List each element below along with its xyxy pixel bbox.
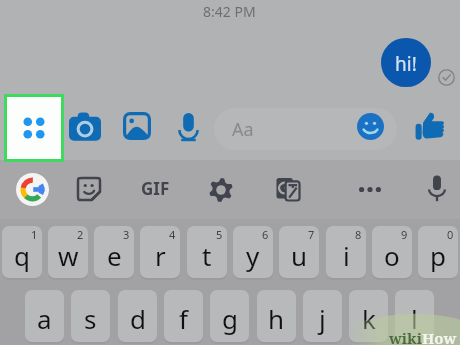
button[interactable]: d — [118, 290, 157, 342]
staticText: j — [319, 301, 326, 336]
button[interactable]: Like — [415, 110, 444, 141]
button[interactable]: 9 — [372, 226, 412, 278]
button[interactable]: Camera — [69, 112, 101, 142]
button[interactable]: Translate — [276, 177, 300, 201]
staticText: a — [37, 301, 52, 336]
button[interactable]: 4 — [140, 226, 180, 278]
staticText: 2 — [77, 227, 84, 242]
button[interactable]: 1 — [2, 226, 42, 278]
button[interactable]: 3 — [94, 226, 134, 278]
button[interactable]: Open extensions — [7, 97, 61, 159]
button[interactable]: hi! — [381, 38, 431, 87]
button[interactable]: Voice input — [428, 175, 446, 202]
staticText: 8:42 PM — [203, 2, 256, 21]
button[interactable]: Stickers — [78, 178, 100, 200]
button[interactable]: j — [303, 290, 342, 342]
staticText: w — [58, 238, 79, 273]
staticText: p — [430, 238, 446, 273]
staticText: Aa — [232, 117, 254, 142]
staticText: o — [384, 238, 400, 273]
staticText: q — [14, 238, 30, 273]
button[interactable]: g — [210, 290, 249, 342]
button[interactable]: Google — [16, 173, 49, 206]
button[interactable]: Voice message — [179, 112, 198, 142]
button[interactable]: l — [395, 290, 434, 342]
button[interactable]: k — [349, 290, 388, 342]
staticText: 6 — [262, 227, 269, 242]
staticText: 9 — [401, 227, 408, 242]
staticText: r — [155, 238, 166, 273]
staticText: How — [422, 328, 457, 345]
staticText: y — [246, 238, 260, 273]
button[interactable]: Photos — [123, 112, 151, 140]
staticText: 1 — [31, 227, 38, 242]
staticText: 4 — [169, 227, 176, 242]
staticText: 8 — [355, 227, 362, 242]
button[interactable]: Settings — [209, 178, 233, 202]
button[interactable]: 6 — [233, 226, 273, 278]
staticText: 5 — [216, 227, 223, 242]
button[interactable]: Emoji — [357, 113, 384, 140]
button[interactable]: f — [164, 290, 203, 342]
staticText: g — [222, 301, 238, 336]
button[interactable]: a — [25, 290, 64, 342]
staticText: i — [343, 238, 350, 273]
button[interactable]: 8 — [326, 226, 366, 278]
staticText: 0 — [447, 227, 454, 242]
button[interactable]: Aa — [214, 108, 397, 150]
button[interactable]: 5 — [187, 226, 227, 278]
button[interactable]: 2 — [48, 226, 88, 278]
staticText: t — [202, 238, 212, 273]
staticText: h — [268, 301, 285, 336]
staticText: l — [411, 301, 418, 336]
staticText: GIF — [141, 177, 170, 200]
staticText: e — [107, 238, 122, 273]
button[interactable]: 7 — [279, 226, 319, 278]
button[interactable]: GIF — [136, 177, 174, 200]
staticText: s — [84, 301, 97, 336]
staticText: wiki — [389, 328, 422, 345]
staticText: k — [362, 301, 376, 336]
button[interactable]: 0 — [418, 226, 458, 278]
staticText: u — [291, 238, 308, 273]
staticText: f — [179, 301, 188, 336]
button[interactable]: More — [355, 178, 385, 201]
button[interactable]: h — [257, 290, 296, 342]
staticText: d — [130, 301, 146, 336]
staticText: 3 — [123, 227, 130, 242]
staticText: hi! — [395, 51, 417, 77]
button[interactable]: s — [71, 290, 110, 342]
staticText: 7 — [308, 227, 315, 242]
